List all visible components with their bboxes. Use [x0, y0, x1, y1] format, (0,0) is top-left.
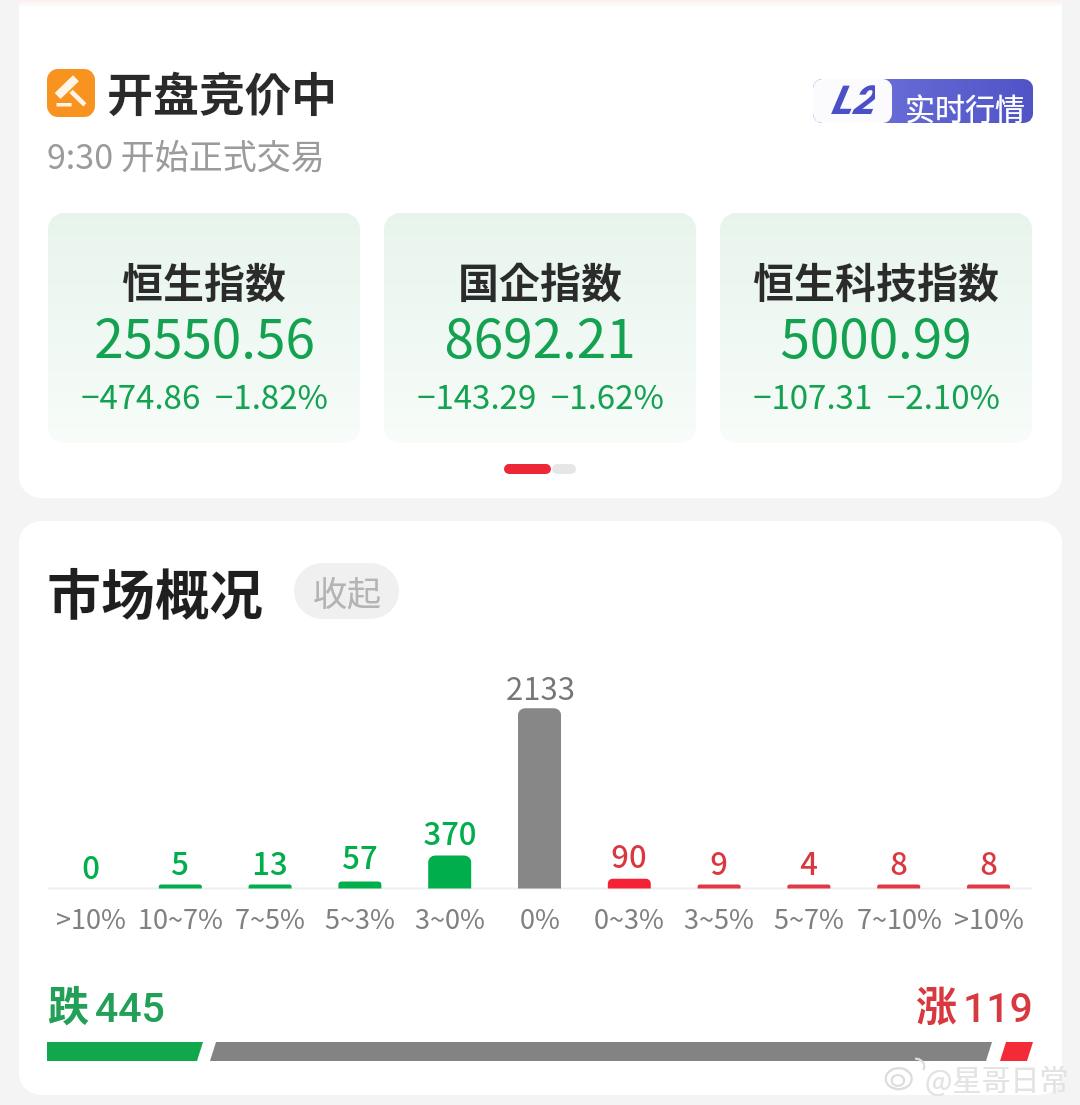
button[interactable]: 开盘竞价 — [47, 69, 95, 117]
button[interactable]: >10% — [945, 660, 1033, 934]
button[interactable]: 7~5% — [226, 660, 314, 934]
staticText: 57 — [342, 833, 378, 878]
staticText: 0~3% — [594, 898, 664, 937]
staticText: 119 — [963, 984, 1033, 1032]
staticText: 市场概况 — [47, 552, 263, 630]
staticText: 9 — [710, 839, 728, 884]
staticText: 恒生指数 — [122, 250, 286, 309]
staticText: 25550.56 — [94, 297, 315, 374]
staticText: 445 — [95, 984, 165, 1032]
button[interactable]: 0% — [496, 660, 584, 934]
button[interactable]: L2 — [813, 79, 1033, 123]
staticText: 3~5% — [684, 898, 754, 937]
button[interactable]: 0~3% — [585, 660, 673, 934]
staticText: >10% — [56, 898, 126, 937]
staticText: 恒生科技指数 — [753, 250, 999, 309]
staticText: 收起 — [313, 567, 381, 616]
button[interactable]: 7~10% — [855, 660, 943, 934]
staticText: 实时行情 — [905, 85, 1025, 123]
button[interactable]: 3~0% — [406, 660, 494, 934]
button[interactable]: 收起 — [294, 563, 399, 619]
button[interactable]: 恒生科技指数 — [720, 213, 1032, 443]
staticText: 涨 — [916, 973, 957, 1032]
staticText: −474.86 −1.82% — [81, 371, 328, 419]
staticText: 国企指数 — [458, 250, 622, 309]
staticText: 8 — [980, 839, 998, 884]
staticText: −107.31 −2.10% — [753, 371, 1000, 419]
staticText: 0 — [82, 843, 100, 888]
staticText: 13 — [252, 839, 288, 884]
button[interactable]: 5~3% — [316, 660, 404, 934]
staticText: 3~0% — [415, 898, 485, 937]
button[interactable]: 10~7% — [136, 660, 224, 934]
staticText: 跌 — [48, 973, 89, 1032]
staticText: 9:30 开始正式交易 — [47, 130, 325, 179]
button[interactable]: 国企指数 — [384, 213, 696, 443]
staticText: 5000.99 — [780, 297, 972, 374]
staticText: 0% — [520, 898, 560, 937]
staticText: 5 — [171, 839, 189, 884]
staticText: 2133 — [506, 664, 575, 709]
staticText: 7~10% — [857, 898, 942, 937]
staticText: 5~7% — [774, 898, 844, 937]
button[interactable]: 恒生指数 — [48, 213, 360, 443]
button[interactable]: 5~7% — [765, 660, 853, 934]
staticText: −143.29 −1.62% — [417, 371, 664, 419]
staticText: 5~3% — [325, 898, 395, 937]
button[interactable]: 3~5% — [675, 660, 763, 934]
button[interactable]: >10% — [47, 660, 135, 934]
staticText: L2 — [831, 79, 875, 121]
staticText: >10% — [954, 898, 1024, 937]
staticText: 开盘竞价中 — [107, 58, 337, 125]
staticText: 7~5% — [235, 898, 305, 937]
staticText: 4 — [800, 839, 818, 884]
staticText: 8692.21 — [444, 297, 636, 374]
staticText: 10~7% — [138, 898, 223, 937]
staticText: 370 — [423, 809, 477, 854]
staticText: 90 — [611, 832, 647, 877]
staticText: @星哥日常 — [925, 1057, 1069, 1099]
staticText: 8 — [890, 839, 908, 884]
